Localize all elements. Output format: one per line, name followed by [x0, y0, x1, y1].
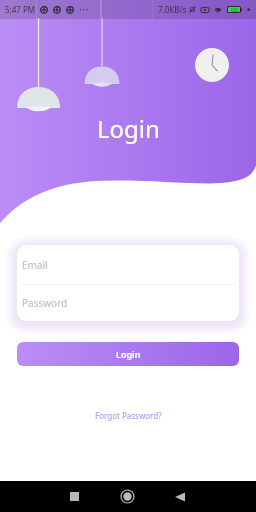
- button[interactable]: Back: [164, 481, 195, 512]
- staticText: ⋯: [79, 4, 89, 16]
- staticText: 5:47 PM: [5, 4, 36, 15]
- staticText: Login: [116, 348, 141, 360]
- staticText: 7.0KB/s: [158, 4, 187, 15]
- staticText: Login: [97, 112, 160, 145]
- button[interactable]: Email: [17, 245, 239, 284]
- button[interactable]: Home: [112, 481, 143, 512]
- staticText: 100: [230, 7, 238, 12]
- staticText: Forgot Password?: [95, 410, 162, 421]
- staticText: Password: [22, 296, 68, 310]
- button[interactable]: Forgot Password?: [89, 407, 168, 424]
- button[interactable]: Password: [17, 285, 239, 321]
- button[interactable]: Recent apps: [59, 481, 90, 512]
- button[interactable]: Login: [17, 342, 239, 366]
- staticText: Email: [22, 258, 48, 272]
